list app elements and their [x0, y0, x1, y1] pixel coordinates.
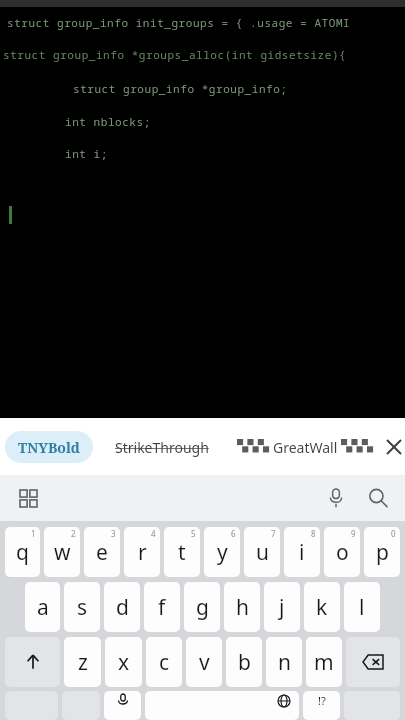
staticText: d	[116, 593, 129, 622]
staticText: r	[138, 538, 147, 567]
button[interactable]: z	[64, 637, 101, 687]
staticText: v	[199, 648, 210, 677]
button[interactable]: e	[84, 527, 120, 577]
staticText: n	[278, 648, 291, 677]
button[interactable]: Close suggestions	[383, 429, 405, 465]
button[interactable]: i	[284, 527, 320, 577]
staticText: a	[37, 593, 49, 622]
button[interactable]: t	[164, 527, 200, 577]
button[interactable]: q	[5, 527, 40, 577]
button[interactable]: Punctuation	[303, 691, 340, 720]
button[interactable]: l	[344, 582, 380, 632]
button[interactable]: u	[244, 527, 280, 577]
button[interactable]: StrikeThrough	[99, 431, 224, 463]
staticText: 6	[231, 528, 236, 539]
button[interactable]: c	[146, 637, 182, 687]
button[interactable]: d	[104, 582, 140, 632]
staticText: 9	[351, 528, 356, 539]
staticText: s	[77, 593, 88, 622]
staticText: e	[96, 538, 108, 567]
staticText: g	[196, 593, 209, 622]
button[interactable]: s	[64, 582, 100, 632]
button[interactable]: r	[124, 527, 160, 577]
button[interactable]: j	[264, 582, 300, 632]
staticText: 0	[391, 528, 396, 539]
staticText: w	[54, 538, 71, 567]
staticText: y	[217, 538, 228, 567]
button[interactable]: m	[306, 637, 342, 687]
button[interactable]: w	[44, 527, 80, 577]
button[interactable]: Space	[145, 691, 299, 720]
staticText: StrikeThrough	[115, 438, 209, 457]
button[interactable]: Voice	[104, 691, 141, 720]
button[interactable]: a	[25, 582, 60, 632]
button[interactable]: x	[105, 637, 142, 687]
button[interactable]: b	[226, 637, 262, 687]
button[interactable]: TNYBold	[5, 431, 93, 463]
button[interactable]: h	[224, 582, 260, 632]
staticText: t	[178, 538, 186, 567]
staticText: 2	[71, 528, 76, 539]
staticText: 3	[111, 528, 116, 539]
staticText: i	[299, 538, 305, 567]
staticText: u	[256, 538, 269, 567]
staticText: 1	[31, 528, 36, 539]
staticText: struct group_info init_groups = { .usage…	[7, 15, 351, 30]
button[interactable]: Voice input	[315, 477, 357, 519]
staticText: struct group_info *group_info;	[73, 81, 288, 96]
button[interactable]: g	[184, 582, 220, 632]
staticText: 5	[191, 528, 196, 539]
staticText: !?	[318, 693, 326, 708]
button[interactable]: Shift	[5, 637, 60, 687]
staticText: GreatWall	[273, 438, 338, 457]
button[interactable]: Search	[357, 477, 399, 519]
staticText: j	[279, 593, 285, 622]
staticText: o	[336, 538, 349, 567]
staticText: struct group_info *groups_alloc(int gids…	[3, 47, 347, 62]
button[interactable]: o	[324, 527, 360, 577]
staticText: b	[238, 648, 251, 677]
staticText: p	[376, 538, 389, 567]
button[interactable]: k	[304, 582, 340, 632]
button[interactable]: GreatWall	[230, 431, 380, 463]
staticText: h	[236, 593, 249, 622]
staticText: c	[159, 648, 170, 677]
staticText: int nblocks;	[65, 114, 151, 129]
staticText: 7	[271, 528, 276, 539]
staticText: int i;	[65, 146, 108, 161]
staticText: x	[118, 648, 130, 677]
button[interactable]: Backspace	[346, 637, 400, 687]
button[interactable]: y	[204, 527, 240, 577]
button[interactable]: p	[364, 527, 400, 577]
staticText: z	[78, 648, 88, 677]
button[interactable]: f	[144, 582, 180, 632]
button[interactable]: v	[186, 637, 222, 687]
staticText: k	[316, 593, 328, 622]
button[interactable]: n	[266, 637, 302, 687]
button[interactable]: Toolbar	[9, 479, 47, 517]
staticText: q	[16, 538, 29, 567]
staticText: TNYBold	[18, 438, 80, 457]
staticText: m	[314, 648, 334, 677]
staticText: l	[359, 593, 365, 622]
staticText: f	[158, 593, 166, 622]
staticText: 4	[151, 528, 156, 539]
staticText: 8	[311, 528, 316, 539]
